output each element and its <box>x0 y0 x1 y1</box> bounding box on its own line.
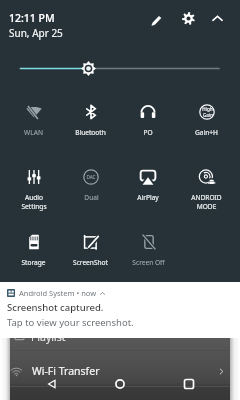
staticText: 12:11 PM <box>9 11 55 25</box>
staticText: ScreenShot <box>73 258 108 267</box>
staticText: WLAN <box>24 128 43 137</box>
button[interactable]: Recent apps <box>181 376 197 392</box>
staticText: Wi-Fi Transfer <box>32 364 100 378</box>
staticText: Gain+H <box>195 128 218 137</box>
staticText: Dual <box>84 193 99 202</box>
button[interactable]: Storage <box>5 228 62 293</box>
staticText: DAC <box>86 174 96 180</box>
button[interactable]: Home <box>112 376 128 392</box>
button[interactable]: Screen Off <box>119 228 177 293</box>
button[interactable]: PO <box>119 98 177 163</box>
button[interactable]: AirPlay <box>119 163 177 228</box>
button[interactable]: Settings <box>180 10 196 26</box>
staticText: Screenshot captured. <box>7 301 104 314</box>
staticText: ANDROID MODE <box>191 193 222 211</box>
staticText: Audio Settings <box>21 193 47 211</box>
button[interactable]: ANDROID MODE <box>177 163 235 228</box>
button[interactable]: ScreenShot <box>62 228 119 293</box>
button[interactable]: Audio Settings <box>5 163 62 228</box>
button[interactable]: Tile <box>177 228 235 293</box>
staticText: Gain <box>203 112 213 118</box>
staticText: Storage <box>21 258 46 267</box>
button[interactable]: WLAN <box>5 98 62 163</box>
button[interactable]: Edit <box>149 12 165 28</box>
staticText: Screen Off <box>132 258 165 267</box>
button[interactable]: Android System • now <box>0 282 240 338</box>
staticText: Android System • now <box>19 288 97 298</box>
staticText: Tap to view your screenshot. <box>7 316 134 329</box>
button[interactable]: Back <box>44 376 60 392</box>
button[interactable]: Playlist <box>15 338 230 344</box>
staticText: Playlist <box>31 338 66 344</box>
button[interactable]: DAC <box>62 163 119 228</box>
button[interactable]: Collapse <box>209 10 225 26</box>
button[interactable]: Bluetooth <box>62 98 119 163</box>
button[interactable]: High <box>177 98 235 163</box>
button[interactable]: Brightness <box>0 56 240 80</box>
staticText: AirPlay <box>137 193 159 202</box>
staticText: PO <box>143 128 153 137</box>
staticText: Sun, Apr 25 <box>9 26 63 40</box>
staticText: High <box>202 106 213 112</box>
staticText: Bluetooth <box>75 128 106 137</box>
button[interactable]: Wi-Fi Transfer <box>15 357 225 385</box>
